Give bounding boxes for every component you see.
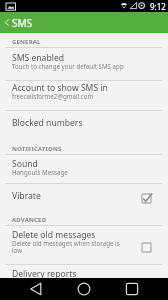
staticText: Sound xyxy=(12,158,38,170)
staticText: Delivery reports xyxy=(12,268,77,280)
staticText: Delete old messages when storage is low xyxy=(12,239,120,255)
button[interactable]: Vibrate xyxy=(0,183,168,210)
button[interactable]: Blocked numbers xyxy=(0,110,168,133)
staticText: Touch to change your default SMS app xyxy=(12,62,124,70)
button[interactable]: Delete old messages xyxy=(0,225,168,264)
staticText: Hangouts Message xyxy=(12,168,68,176)
staticText: GENERAL xyxy=(12,38,41,46)
staticText: ADVANCED xyxy=(12,216,47,224)
button[interactable]: SMS enabled xyxy=(0,47,168,80)
button[interactable]: Recent apps xyxy=(126,278,138,300)
button[interactable]: Home xyxy=(78,278,90,300)
staticText: Blocked numbers xyxy=(12,117,83,129)
button[interactable]: Account to show SMS in xyxy=(0,80,168,110)
staticText: Delete old messages xyxy=(12,229,96,241)
button[interactable]: Navigate up xyxy=(0,12,12,33)
button[interactable]: Back xyxy=(30,278,42,300)
staticText: 9:12 xyxy=(150,1,166,12)
staticText: SMS enabled xyxy=(12,52,65,64)
staticText: NOTIFICATIONS xyxy=(12,145,62,153)
staticText: SMS xyxy=(12,16,33,30)
button[interactable]: Delivery reports xyxy=(0,264,168,278)
button[interactable]: Sound xyxy=(0,154,168,183)
staticText: freecallsforme2@gmail.com xyxy=(12,92,94,100)
staticText: Vibrate xyxy=(12,190,41,202)
staticText: Account to show SMS in xyxy=(12,82,108,94)
